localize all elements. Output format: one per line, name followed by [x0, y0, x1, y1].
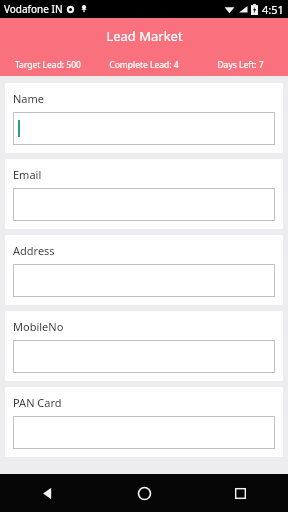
- staticText: Days Left: 7: [217, 59, 264, 71]
- staticText: Complete Lead: 4: [109, 59, 179, 71]
- button[interactable]: Recent apps: [192, 474, 288, 512]
- button[interactable]: [13, 188, 275, 221]
- button[interactable]: Home: [96, 474, 192, 512]
- staticText: Name: [13, 91, 45, 106]
- button[interactable]: Days Left: 7: [192, 54, 288, 76]
- button[interactable]: [13, 416, 275, 449]
- button[interactable]: Complete Lead: 4: [96, 54, 192, 76]
- staticText: 4:51: [262, 2, 284, 17]
- staticText: Email: [13, 167, 42, 182]
- button[interactable]: Name: [5, 83, 283, 153]
- button[interactable]: Email: [5, 159, 283, 229]
- staticText: PAN Card: [13, 395, 62, 410]
- staticText: Lead Market: [106, 27, 183, 45]
- staticText: Address: [13, 243, 55, 258]
- button[interactable]: [13, 264, 275, 297]
- staticText: Vodafone IN: [4, 2, 63, 16]
- button[interactable]: [13, 340, 275, 373]
- staticText: MobileNo: [13, 319, 64, 334]
- button[interactable]: Back: [0, 474, 96, 512]
- staticText: Target Lead: 500: [15, 59, 81, 71]
- button[interactable]: PAN Card: [5, 387, 283, 457]
- button[interactable]: MobileNo: [5, 311, 283, 381]
- button[interactable]: Address: [5, 235, 283, 305]
- button[interactable]: [13, 112, 275, 145]
- button[interactable]: Target Lead: 500: [0, 54, 96, 76]
